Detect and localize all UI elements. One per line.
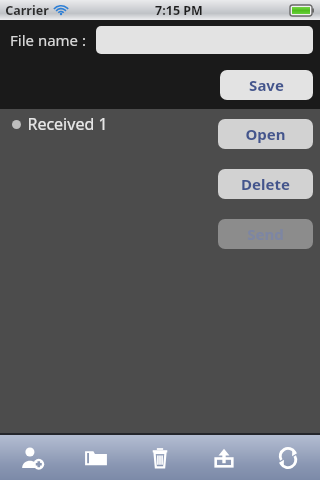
- staticText: File name :: [10, 30, 86, 50]
- staticText: Received 1: [27, 113, 108, 135]
- button[interactable]: Open folder: [64, 435, 128, 480]
- staticText: Save: [249, 75, 284, 95]
- button[interactable]: Refresh: [256, 435, 320, 480]
- button[interactable]: Share: [192, 435, 256, 480]
- staticText: 7:15 PM: [155, 2, 203, 19]
- staticText: Carrier: [5, 2, 49, 19]
- button[interactable]: [96, 26, 313, 54]
- staticText: Send: [247, 224, 284, 244]
- button[interactable]: Delete: [128, 435, 192, 480]
- button[interactable]: Open: [218, 119, 313, 149]
- button[interactable]: Delete: [218, 169, 313, 199]
- staticText: Delete: [241, 174, 290, 194]
- button[interactable]: Send: [218, 219, 313, 249]
- staticText: Open: [245, 124, 286, 144]
- button[interactable]: Received 1: [0, 109, 320, 139]
- button[interactable]: Save: [220, 70, 313, 100]
- button[interactable]: Add contact: [0, 435, 64, 480]
